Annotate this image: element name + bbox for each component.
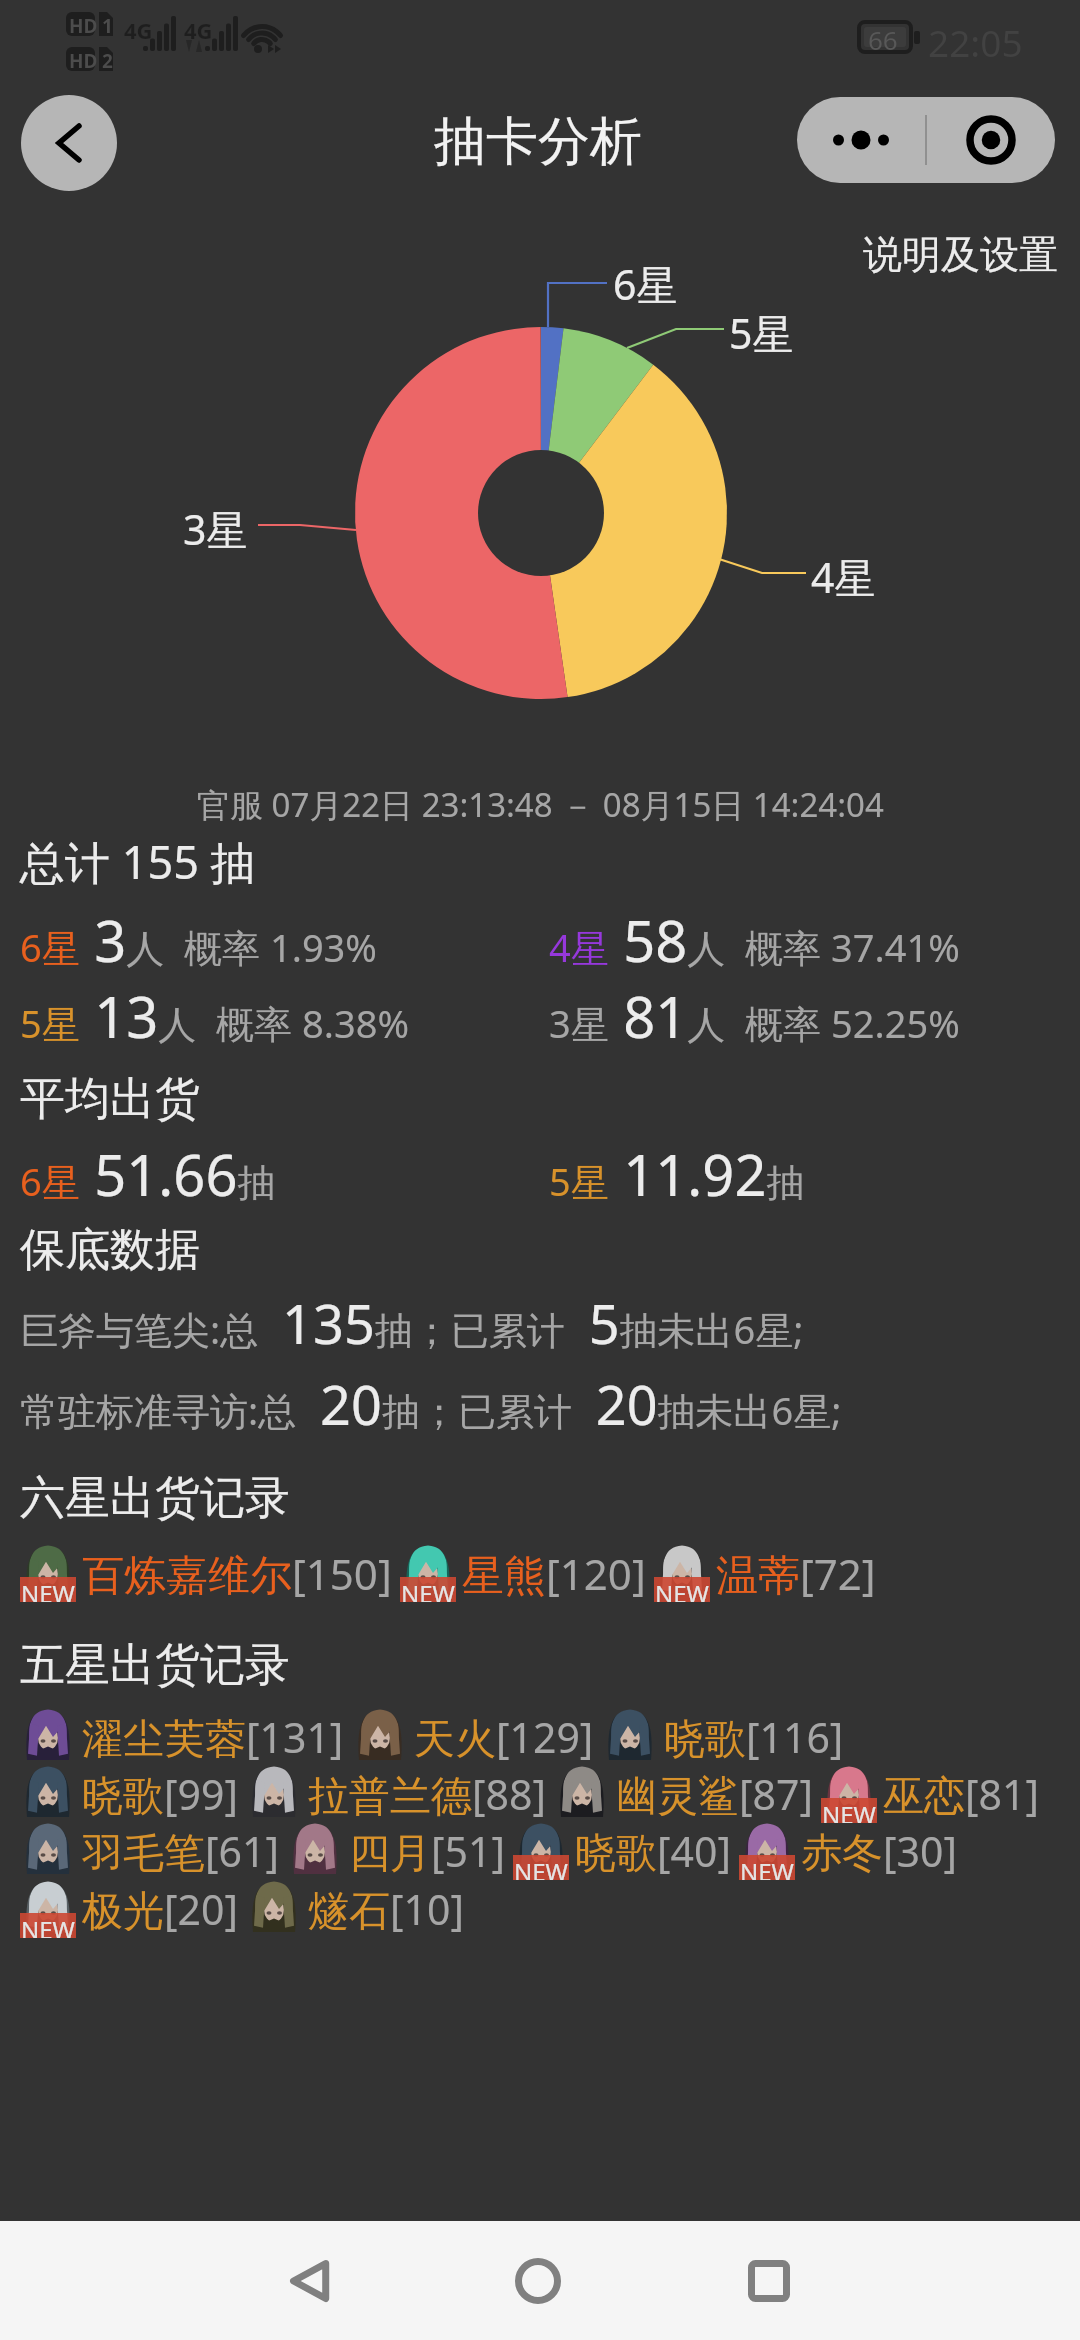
staticText: 星熊[120] bbox=[462, 1545, 646, 1602]
button[interactable]: NEW bbox=[20, 1544, 400, 1602]
staticText: NEW bbox=[655, 1577, 709, 1602]
button[interactable]: 晓歌[99] bbox=[20, 1765, 246, 1823]
staticText: 3星 81人 概率 52.25% bbox=[549, 978, 960, 1054]
staticText: 4G bbox=[124, 15, 153, 45]
staticText: 四月[51] bbox=[349, 1823, 505, 1879]
button[interactable]: 幽灵鲨[87] bbox=[554, 1765, 821, 1823]
staticText: 2 bbox=[102, 48, 113, 74]
staticText: NEW bbox=[514, 1855, 568, 1880]
staticText: NEW bbox=[740, 1855, 794, 1880]
staticText: 5星 13人 概率 8.38% bbox=[20, 978, 409, 1054]
button[interactable]: 天火[129] bbox=[352, 1708, 602, 1766]
staticText: 22:05 bbox=[928, 17, 1023, 67]
button[interactable]: 说明及设置 bbox=[863, 230, 1058, 279]
staticText: HD bbox=[69, 48, 98, 74]
staticText: 温蒂[72] bbox=[716, 1545, 876, 1602]
staticText: 赤冬[30] bbox=[801, 1823, 957, 1879]
button[interactable]: 拉普兰德[88] bbox=[246, 1765, 554, 1823]
button[interactable]: 燧石[10] bbox=[246, 1880, 472, 1938]
button[interactable]: NEW bbox=[739, 1822, 965, 1880]
staticText: 1 bbox=[102, 13, 113, 39]
button[interactable]: 羽毛笔[61] bbox=[20, 1822, 287, 1880]
staticText: 濯尘芙蓉[131] bbox=[82, 1709, 344, 1765]
button[interactable]: NEW bbox=[654, 1544, 884, 1602]
button[interactable]: NEW bbox=[20, 1880, 246, 1938]
staticText: 六星出货记录 bbox=[20, 1470, 290, 1527]
staticText: 幽灵鲨[87] bbox=[616, 1766, 813, 1822]
staticText: 天火[129] bbox=[414, 1709, 594, 1765]
staticText: 4星 bbox=[811, 549, 876, 605]
staticText: 66 bbox=[868, 22, 898, 57]
button[interactable]: Home bbox=[492, 2221, 584, 2340]
staticText: 6星 3人 概率 1.93% bbox=[20, 902, 377, 978]
staticText: 五星出货记录 bbox=[20, 1637, 290, 1694]
staticText: 5星 bbox=[729, 305, 794, 361]
staticText: 6星 bbox=[613, 256, 678, 312]
staticText: 巫恋[81] bbox=[883, 1766, 1039, 1822]
staticText: 极光[20] bbox=[82, 1881, 238, 1937]
button[interactable]: NEW bbox=[400, 1544, 654, 1602]
staticText: 官服 07月22日 23:13:48 － 08月15日 14:24:04 bbox=[197, 782, 884, 827]
staticText: 常驻标准寻访:总 20抽；已累计 20抽未出6星; bbox=[20, 1367, 842, 1441]
button[interactable]: More options bbox=[797, 97, 1055, 183]
staticText: 晓歌[116] bbox=[664, 1709, 844, 1765]
button[interactable]: Back bbox=[265, 2221, 357, 2340]
button[interactable]: NEW bbox=[513, 1822, 739, 1880]
staticText: NEW bbox=[401, 1577, 455, 1602]
staticText: HD bbox=[69, 13, 98, 39]
button[interactable]: NEW bbox=[821, 1765, 1047, 1823]
staticText: NEW bbox=[21, 1577, 75, 1602]
staticText: 总计 155 抽 bbox=[20, 831, 256, 892]
staticText: 拉普兰德[88] bbox=[308, 1766, 546, 1822]
button[interactable]: 晓歌[116] bbox=[602, 1708, 852, 1766]
staticText: 巨斧与笔尖:总 135抽；已累计 5抽未出6星; bbox=[20, 1286, 804, 1360]
staticText: 4星 58人 概率 37.41% bbox=[549, 902, 960, 978]
staticText: 保底数据 bbox=[20, 1222, 200, 1279]
staticText: 燧石[10] bbox=[308, 1881, 464, 1937]
button[interactable]: 四月[51] bbox=[287, 1822, 513, 1880]
staticText: 6星 51.66抽 bbox=[20, 1136, 276, 1212]
staticText: 抽卡分析 bbox=[434, 109, 642, 175]
staticText: 3星 bbox=[183, 501, 248, 557]
staticText: 4G bbox=[184, 15, 213, 45]
staticText: 晓歌[40] bbox=[575, 1823, 731, 1879]
staticText: 5星 11.92抽 bbox=[549, 1136, 805, 1212]
button[interactable]: 濯尘芙蓉[131] bbox=[20, 1708, 352, 1766]
staticText: 平均出货 bbox=[20, 1071, 200, 1128]
staticText: 百炼嘉维尔[150] bbox=[82, 1545, 392, 1602]
staticText: 晓歌[99] bbox=[82, 1766, 238, 1822]
staticText: 羽毛笔[61] bbox=[82, 1823, 279, 1879]
button[interactable]: Recents bbox=[723, 2221, 815, 2340]
staticText: NEW bbox=[21, 1913, 75, 1938]
staticText: NEW bbox=[822, 1798, 876, 1823]
button[interactable]: Back bbox=[21, 95, 117, 191]
